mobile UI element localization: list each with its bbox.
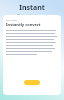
- staticText: Write to / text convert: [17, 14, 48, 18]
- staticText: Instant: [19, 3, 45, 13]
- staticText: Your Text: [6, 18, 17, 21]
- button[interactable]: Convert: [24, 80, 40, 85]
- staticText: Instantly convert: [6, 22, 41, 27]
